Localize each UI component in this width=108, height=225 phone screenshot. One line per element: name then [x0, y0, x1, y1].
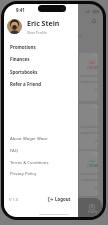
- staticText: About Wager Wave: [10, 136, 48, 142]
- button[interactable]: Eric Stein: [7, 19, 67, 34]
- staticText: 1:15: [92, 54, 98, 58]
- staticText: and numbered: [80, 171, 98, 176]
- staticText: ing: [76, 33, 83, 38]
- other: Logout: [48, 197, 53, 202]
- button[interactable]: 1:15: [79, 53, 98, 101]
- staticText: Eric Stein: [27, 19, 60, 29]
- staticText: 9:41: [16, 7, 25, 13]
- staticText: $130: [90, 163, 98, 168]
- button[interactable]: Profile: [6, 198, 102, 217]
- button[interactable]: V 1.0: [9, 193, 19, 205]
- staticText: 1:15: [92, 152, 98, 156]
- button[interactable]: About Wager Wave: [4, 133, 78, 145]
- staticText: View Profile: [27, 30, 47, 34]
- button[interactable]: FAQ: [4, 145, 78, 157]
- staticText: competition is: [80, 79, 98, 84]
- button[interactable]: Sportsbooks: [4, 66, 78, 78]
- other: Notifications: [91, 18, 97, 24]
- button[interactable]: 1:15: [79, 151, 98, 196]
- staticText: Terms & Conditions: [10, 160, 49, 166]
- staticText: competition is: [80, 177, 98, 182]
- button[interactable]: Privacy Policy: [4, 168, 78, 180]
- staticText: Profile: [88, 210, 98, 214]
- staticText: Finances: [10, 56, 30, 62]
- button[interactable]: Logout: [48, 193, 71, 205]
- button[interactable]: Refer a Friend: [4, 78, 78, 90]
- staticText: and numbered: [80, 124, 98, 129]
- staticText: Promotions: [10, 44, 36, 50]
- button[interactable]: Finances: [4, 53, 78, 65]
- staticText: -100: [90, 61, 95, 64]
- button[interactable]: Promotions: [4, 41, 78, 53]
- staticText: Refer a Friend: [10, 81, 41, 87]
- staticText: and numbered: [80, 73, 98, 78]
- staticText: competition is: [80, 130, 98, 135]
- staticText: FAQ: [10, 148, 18, 154]
- staticText: Sportsbooks: [10, 69, 38, 75]
- staticText: $130: [90, 65, 98, 70]
- button[interactable]: 1:15: [79, 104, 98, 149]
- button[interactable]: Terms & Conditions: [4, 157, 78, 169]
- other: Profile: [89, 204, 95, 210]
- staticText: 1:15: [92, 105, 98, 109]
- staticText: Logout: [55, 196, 71, 202]
- staticText: V 1.0: [9, 197, 19, 202]
- staticText: Privacy Policy: [10, 171, 37, 177]
- staticText: +100: [89, 159, 95, 162]
